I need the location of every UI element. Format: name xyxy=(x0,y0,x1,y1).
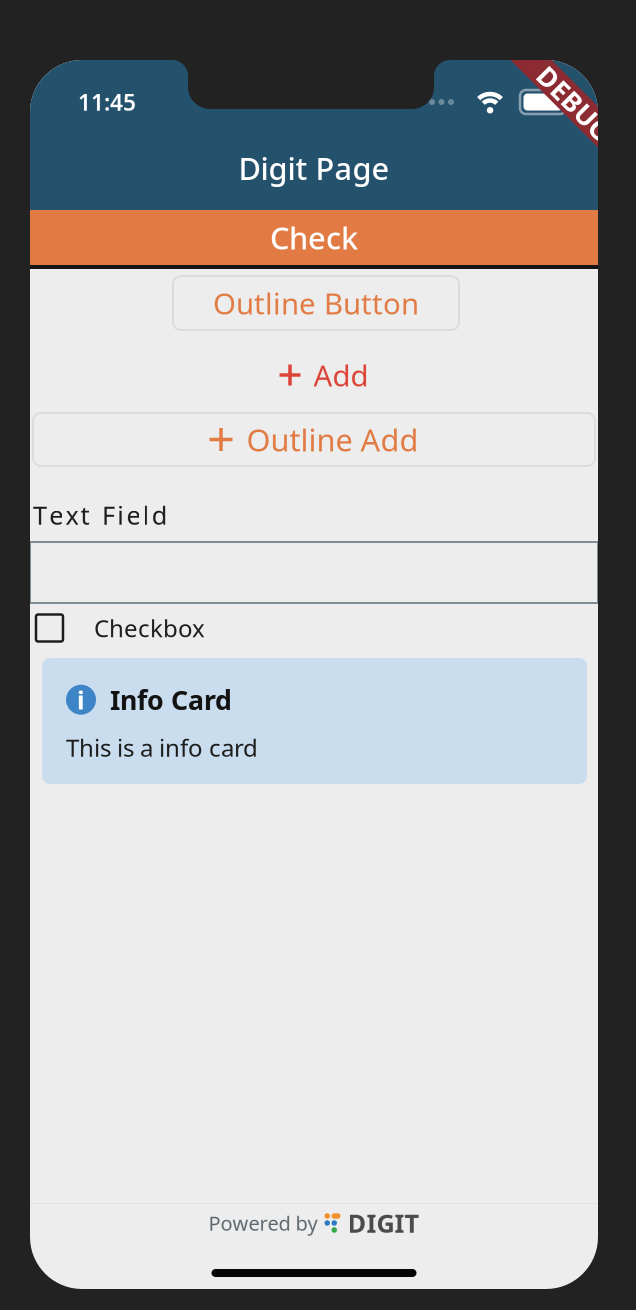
staticText: Powered by xyxy=(208,1210,317,1236)
staticText: DIGIT xyxy=(347,1206,419,1240)
staticText: Digit Page xyxy=(238,148,389,188)
staticText: Info Card xyxy=(110,682,232,717)
staticText: i xyxy=(117,498,124,532)
staticText: F xyxy=(102,498,115,532)
staticText: x xyxy=(65,498,78,532)
staticText: e xyxy=(126,498,140,532)
staticText: i xyxy=(77,683,85,716)
staticText: d xyxy=(152,498,168,532)
staticText: Outline Button xyxy=(213,283,419,322)
staticText: e xyxy=(49,498,63,532)
staticText: This is a info card xyxy=(66,731,258,763)
button[interactable]: Add xyxy=(224,349,424,401)
staticText: Checkbox xyxy=(94,612,205,644)
staticText: Outline Add xyxy=(246,419,418,460)
staticText: 11:45 xyxy=(78,87,136,117)
button[interactable]: Outline Button xyxy=(173,276,459,330)
staticText: T xyxy=(33,498,47,532)
staticText: Add xyxy=(313,355,368,394)
staticText: Check xyxy=(270,217,358,258)
button[interactable]: Outline Add xyxy=(33,413,595,466)
button[interactable]: Check xyxy=(30,210,598,265)
staticText: l xyxy=(143,498,150,532)
button[interactable]: Checkbox xyxy=(30,603,320,653)
staticText: DEBUG xyxy=(528,85,620,121)
staticText: t xyxy=(81,498,90,532)
